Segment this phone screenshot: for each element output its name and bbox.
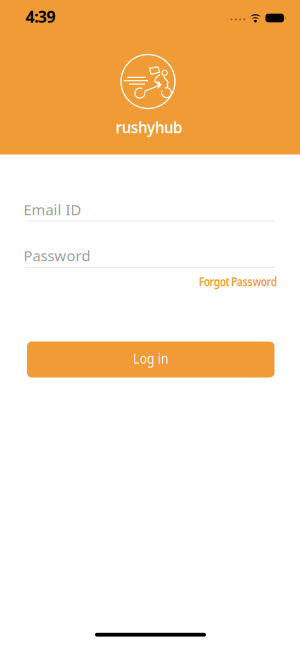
staticText: Email ID	[23, 200, 81, 219]
staticText: Password	[23, 246, 90, 265]
staticText: rushyhub	[113, 116, 185, 138]
button[interactable]: Log in	[27, 341, 274, 377]
button[interactable]: Forgot Password	[175, 272, 277, 290]
staticText: Log in	[129, 348, 172, 368]
staticText: 4:39	[25, 6, 55, 27]
staticText: Forgot Password	[175, 272, 277, 290]
